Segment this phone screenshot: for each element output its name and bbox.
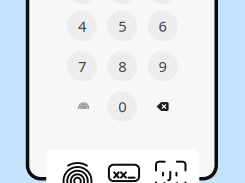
button[interactable]: 4	[67, 11, 97, 41]
staticText: 0	[118, 97, 126, 116]
button[interactable]: 5	[107, 11, 137, 41]
button[interactable]: 7	[67, 51, 97, 81]
button[interactable]: Sign in with password	[109, 165, 139, 181]
staticText: 6	[159, 16, 167, 36]
button[interactable]: 6	[147, 11, 178, 41]
button[interactable]: 1	[67, 0, 97, 4]
button[interactable]: Touch ID	[68, 91, 99, 122]
button[interactable]: 8	[107, 51, 137, 81]
staticText: 9	[159, 57, 167, 76]
button[interactable]: 9	[147, 51, 178, 81]
staticText: 5	[118, 16, 126, 36]
staticText: 4	[78, 16, 86, 36]
staticText: 7	[78, 57, 86, 76]
button[interactable]: Sign in with Face ID	[154, 159, 188, 183]
button[interactable]: 0	[107, 91, 137, 122]
button[interactable]: Delete	[147, 91, 178, 122]
button[interactable]: 2	[107, 0, 137, 4]
staticText: 8	[118, 57, 126, 76]
button[interactable]: Sign in with Touch ID	[60, 152, 94, 183]
button[interactable]: 3	[147, 0, 178, 4]
